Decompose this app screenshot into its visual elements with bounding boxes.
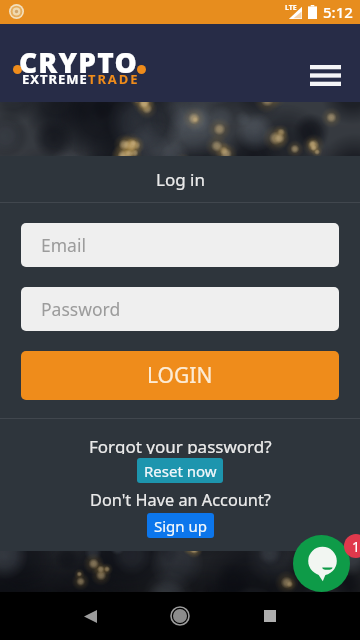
staticText: Password (41, 297, 121, 321)
button[interactable]: Menu (296, 46, 355, 105)
staticText: LTE (285, 3, 297, 13)
staticText: CRYPTO (19, 43, 138, 81)
staticText: TRADE (88, 70, 140, 88)
button[interactable]: Home (156, 592, 204, 640)
staticText: Sign up (154, 516, 207, 536)
button[interactable]: Recents (246, 592, 294, 640)
staticText: Log in (156, 168, 205, 191)
staticText: Don't Have an Account? (90, 489, 271, 508)
button[interactable]: Reset now (137, 458, 223, 483)
button[interactable]: Open chat (293, 535, 350, 592)
button[interactable]: Password (21, 287, 339, 331)
staticText: Email (41, 233, 86, 257)
button[interactable]: Sign up (147, 513, 214, 538)
staticText: EXTREME (22, 70, 88, 88)
button[interactable]: LOGIN (21, 351, 339, 400)
button[interactable]: Email (21, 223, 339, 267)
staticText: 5:12 (323, 2, 353, 22)
button[interactable]: Back (66, 592, 114, 640)
staticText: Reset now (144, 461, 217, 481)
staticText: 1 (352, 537, 360, 556)
staticText: Forgot your password? (89, 435, 272, 454)
staticText: LOGIN (147, 361, 213, 390)
